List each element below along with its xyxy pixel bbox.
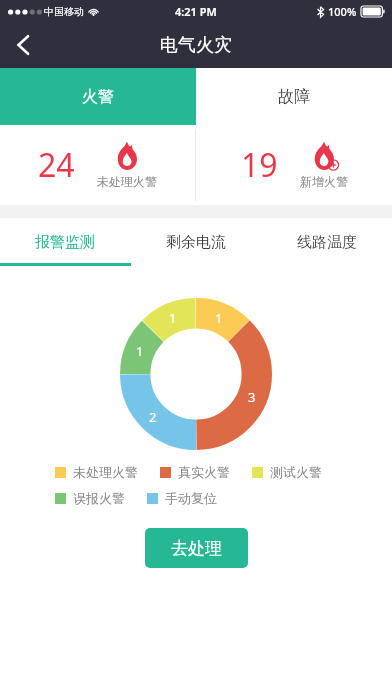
staticText: 2 <box>149 408 157 426</box>
staticText: 19 <box>241 143 278 187</box>
staticText: 1 <box>215 309 223 327</box>
staticText: 4:21 PM <box>175 4 217 19</box>
button[interactable]: 故障 <box>196 68 392 125</box>
staticText: 电气火灾 <box>160 34 232 57</box>
staticText: 报警监测 <box>35 233 95 252</box>
staticText: 中国移动 <box>44 5 84 18</box>
staticText: 1 <box>169 309 177 327</box>
staticText: 测试火警 <box>270 464 322 480</box>
staticText: 未处理火警 <box>73 464 138 480</box>
staticText: 剩余电流 <box>166 233 226 252</box>
staticText: 新增火警 <box>300 174 348 189</box>
staticText: 去处理 <box>171 538 222 559</box>
button[interactable]: Back <box>0 22 46 68</box>
button[interactable]: 剩余电流 <box>130 218 261 266</box>
staticText: 故障 <box>278 87 310 107</box>
staticText: 1 <box>136 342 144 360</box>
button[interactable]: 火警 <box>0 68 196 125</box>
staticText: 线路温度 <box>297 233 357 252</box>
button[interactable]: 报警监测 <box>0 218 130 266</box>
staticText: 误报火警 <box>73 490 125 506</box>
staticText: 火警 <box>82 87 114 107</box>
staticText: 100% <box>328 4 357 19</box>
staticText: 真实火警 <box>178 464 230 480</box>
button[interactable]: 24 <box>0 125 195 205</box>
staticText: 24 <box>38 143 75 187</box>
button[interactable]: 去处理 <box>145 528 248 568</box>
staticText: 手动复位 <box>165 490 217 506</box>
button[interactable]: 19 <box>196 125 392 205</box>
staticText: 未处理火警 <box>97 174 157 189</box>
button[interactable]: 线路温度 <box>261 218 392 266</box>
staticText: 3 <box>248 388 256 406</box>
